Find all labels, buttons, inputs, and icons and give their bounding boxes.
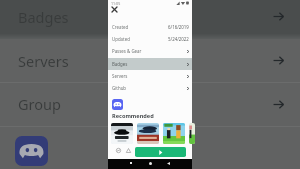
button[interactable]: Play bbox=[135, 147, 186, 157]
button[interactable] bbox=[137, 123, 159, 144]
button[interactable]: Github bbox=[112, 82, 189, 94]
staticText: Group bbox=[18, 94, 61, 114]
staticText: Servers bbox=[18, 51, 69, 71]
staticText: Updated bbox=[112, 36, 130, 42]
button[interactable]: Servers bbox=[112, 70, 189, 82]
staticText: Recommended bbox=[112, 112, 154, 120]
button[interactable] bbox=[0, 126, 300, 169]
staticText: Passes & Gear bbox=[112, 48, 142, 54]
button[interactable]: Home bbox=[146, 159, 154, 167]
staticText: 11:05 bbox=[111, 1, 121, 6]
button[interactable]: Close bbox=[109, 4, 120, 15]
button[interactable] bbox=[163, 123, 185, 144]
staticText: Badges bbox=[18, 7, 69, 27]
staticText: 6/16/2019 bbox=[168, 24, 189, 30]
button[interactable]: Created bbox=[112, 21, 189, 33]
staticText: 5/24/2022 bbox=[168, 36, 189, 42]
staticText: Github bbox=[112, 85, 127, 91]
staticText: Badges bbox=[112, 61, 128, 67]
staticText: Created bbox=[112, 24, 129, 30]
button[interactable]: Updated bbox=[112, 33, 189, 45]
button[interactable] bbox=[189, 123, 195, 144]
button[interactable]: Group bbox=[0, 82, 300, 126]
button[interactable]: Servers bbox=[0, 39, 300, 82]
button[interactable]: Badges bbox=[112, 58, 189, 70]
button[interactable]: Back bbox=[164, 159, 172, 167]
button[interactable]: Report bbox=[124, 146, 132, 154]
button[interactable]: More info bbox=[114, 146, 122, 154]
button[interactable]: Recents bbox=[127, 159, 135, 167]
staticText: Servers bbox=[112, 73, 128, 79]
button[interactable] bbox=[111, 123, 133, 144]
button[interactable]: Discord bbox=[112, 99, 123, 110]
button[interactable]: Passes & Gear bbox=[112, 45, 189, 57]
button[interactable]: Badges bbox=[0, 0, 300, 39]
